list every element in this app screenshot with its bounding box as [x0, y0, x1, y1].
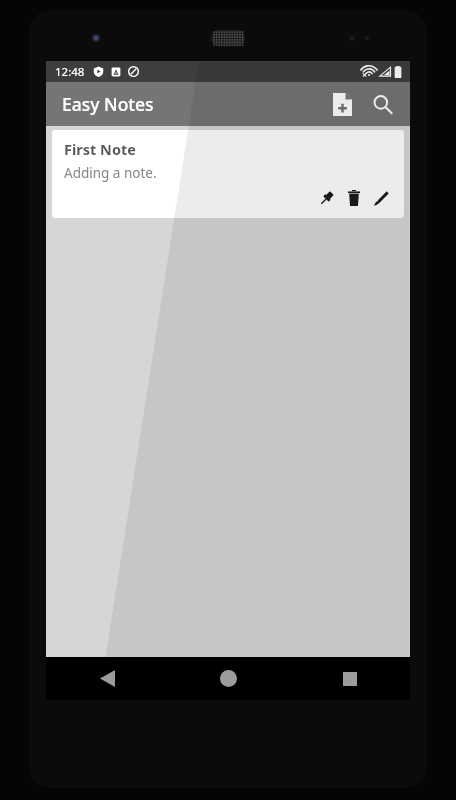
button[interactable]: New note: [322, 84, 362, 124]
staticText: First Note: [64, 139, 136, 159]
button[interactable]: Home: [168, 657, 289, 700]
staticText: Adding a note.: [64, 164, 157, 182]
button[interactable]: Back: [46, 657, 168, 700]
button[interactable]: Edit note: [368, 185, 394, 211]
button[interactable]: Recent apps: [289, 657, 410, 700]
button[interactable]: Pin note: [314, 185, 340, 211]
button[interactable]: Search: [362, 84, 402, 124]
button[interactable]: Delete note: [341, 185, 367, 211]
staticText: 12:48: [55, 64, 85, 80]
button[interactable]: First Note: [52, 130, 404, 218]
staticText: Easy Notes: [62, 92, 154, 116]
